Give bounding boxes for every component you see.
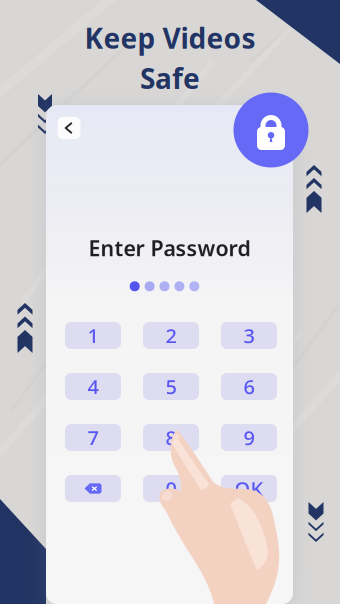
button[interactable]: 5 <box>143 373 199 400</box>
button[interactable]: OK <box>221 475 277 502</box>
button[interactable]: 1 <box>65 322 121 349</box>
staticText: 0 <box>165 475 176 502</box>
staticText: Enter Password <box>88 234 250 262</box>
button[interactable]: 6 <box>221 373 277 400</box>
staticText: 1 <box>87 322 98 349</box>
staticText: 4 <box>87 373 98 400</box>
button[interactable]: 2 <box>143 322 199 349</box>
button[interactable]: Locked <box>233 92 308 167</box>
button[interactable] <box>65 475 121 502</box>
staticText: 6 <box>243 373 254 400</box>
staticText: OK <box>234 475 263 502</box>
staticText: Keep Videos <box>84 19 255 56</box>
button[interactable]: 4 <box>65 373 121 400</box>
staticText: 8 <box>165 424 176 451</box>
button[interactable]: 3 <box>221 322 277 349</box>
button[interactable]: 0 <box>143 475 199 502</box>
staticText: 5 <box>165 373 176 400</box>
staticText: 9 <box>243 424 254 451</box>
button[interactable]: Back <box>57 117 80 139</box>
staticText: Safe <box>140 59 200 97</box>
staticText: 7 <box>87 424 98 451</box>
button[interactable]: 7 <box>65 424 121 451</box>
button[interactable]: 9 <box>221 424 277 451</box>
staticText: 2 <box>165 322 176 349</box>
staticText: 3 <box>243 322 254 349</box>
button[interactable]: 8 <box>143 424 199 451</box>
